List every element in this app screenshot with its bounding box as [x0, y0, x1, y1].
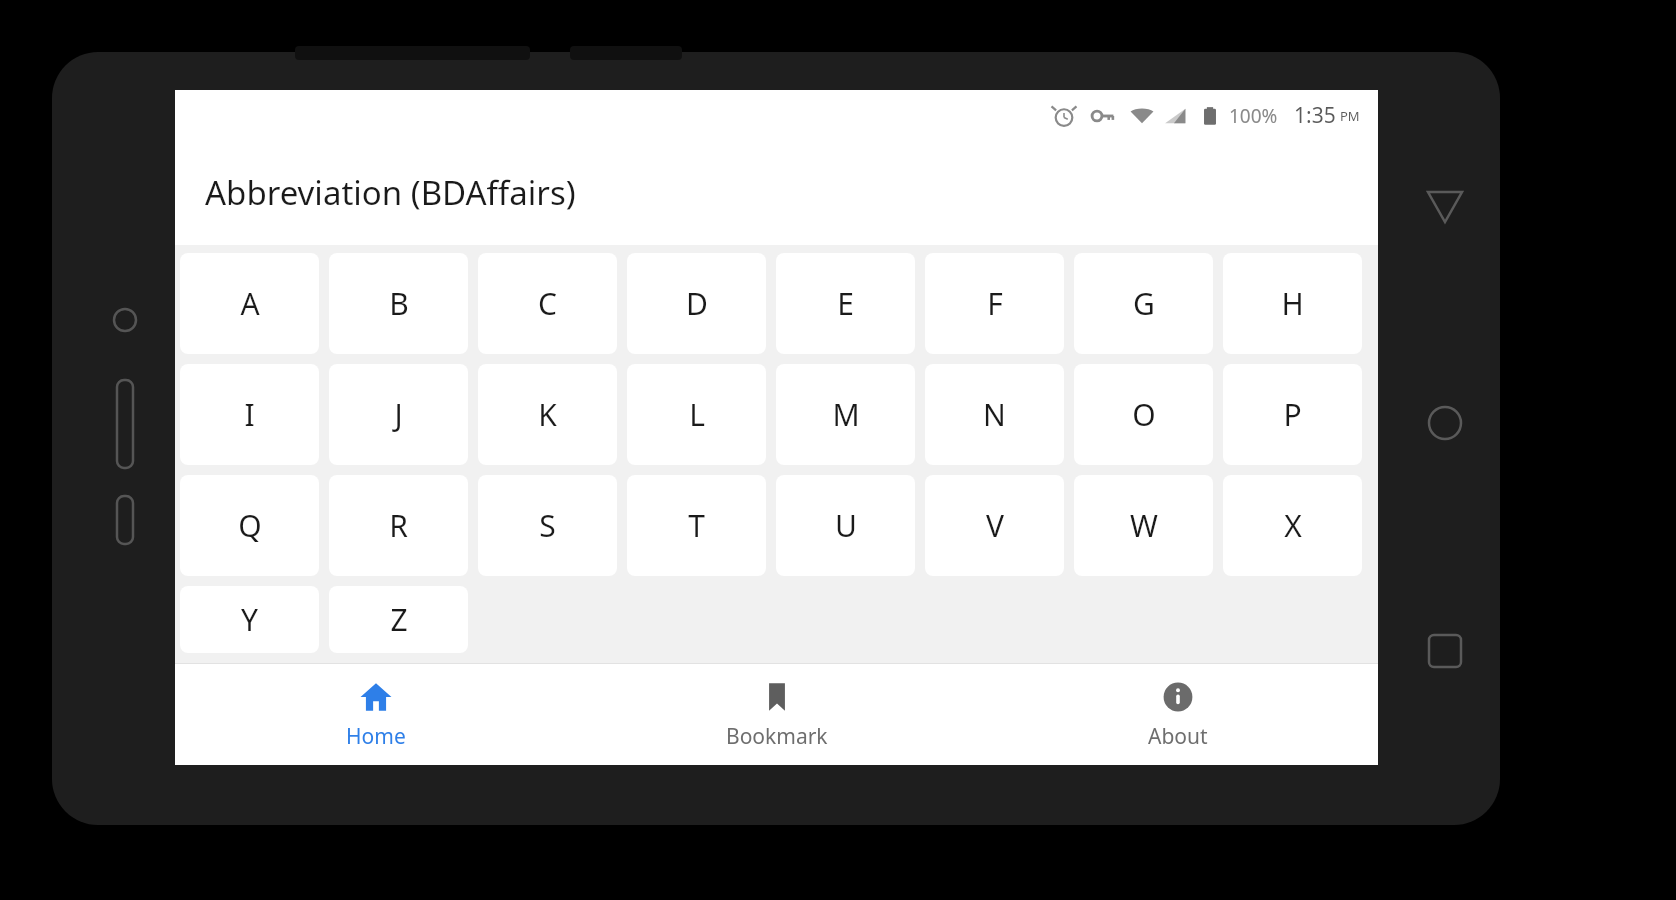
button[interactable]: C — [478, 253, 617, 354]
staticText: U — [835, 505, 857, 546]
staticText: M — [832, 394, 860, 435]
staticText: S — [539, 505, 556, 546]
staticText: C — [538, 283, 557, 324]
button[interactable]: Y — [180, 586, 319, 653]
staticText: R — [389, 505, 408, 546]
staticText: T — [688, 505, 705, 546]
button[interactable]: Bookmark — [576, 664, 977, 765]
staticText: PM — [1340, 107, 1360, 125]
button[interactable]: J — [329, 364, 468, 465]
staticText: W — [1130, 505, 1158, 546]
button[interactable]: T — [627, 475, 766, 576]
button[interactable]: X — [1223, 475, 1362, 576]
staticText: L — [689, 394, 705, 435]
button[interactable]: E — [776, 253, 915, 354]
button[interactable]: N — [925, 364, 1064, 465]
button[interactable]: S — [478, 475, 617, 576]
button[interactable]: W — [1074, 475, 1213, 576]
button[interactable]: F — [925, 253, 1064, 354]
button[interactable]: Home — [175, 664, 576, 765]
button[interactable]: D — [627, 253, 766, 354]
staticText: About — [1148, 722, 1208, 751]
staticText: O — [1132, 394, 1156, 435]
staticText: H — [1281, 283, 1304, 324]
staticText: Z — [390, 599, 408, 640]
staticText: J — [394, 394, 403, 435]
staticText: V — [986, 505, 1004, 546]
button[interactable]: H — [1223, 253, 1362, 354]
staticText: N — [983, 394, 1006, 435]
staticText: Bookmark — [726, 722, 828, 751]
staticText: P — [1283, 394, 1302, 435]
button[interactable]: A — [180, 253, 319, 354]
button[interactable]: About — [977, 664, 1378, 765]
button[interactable]: U — [776, 475, 915, 576]
staticText: Y — [241, 599, 258, 640]
staticText: B — [389, 283, 409, 324]
button[interactable]: P — [1223, 364, 1362, 465]
staticText: 1:35 — [1294, 101, 1336, 130]
button[interactable]: K — [478, 364, 617, 465]
button[interactable]: V — [925, 475, 1064, 576]
staticText: 100% — [1229, 103, 1278, 129]
button[interactable]: M — [776, 364, 915, 465]
staticText: I — [244, 394, 255, 435]
button[interactable]: B — [329, 253, 468, 354]
button[interactable]: O — [1074, 364, 1213, 465]
staticText: Q — [238, 505, 262, 546]
button[interactable]: L — [627, 364, 766, 465]
staticText: K — [538, 394, 557, 435]
button[interactable]: G — [1074, 253, 1213, 354]
button[interactable]: Z — [329, 586, 468, 653]
staticText: A — [240, 283, 260, 324]
staticText: X — [1284, 505, 1302, 546]
staticText: F — [987, 283, 1003, 324]
staticText: Abbreviation (BDAffairs) — [205, 170, 576, 215]
staticText: Home — [346, 722, 406, 751]
staticText: D — [686, 283, 708, 324]
staticText: E — [837, 283, 854, 324]
staticText: G — [1133, 283, 1155, 324]
button[interactable]: R — [329, 475, 468, 576]
button[interactable]: Q — [180, 475, 319, 576]
button[interactable]: I — [180, 364, 319, 465]
